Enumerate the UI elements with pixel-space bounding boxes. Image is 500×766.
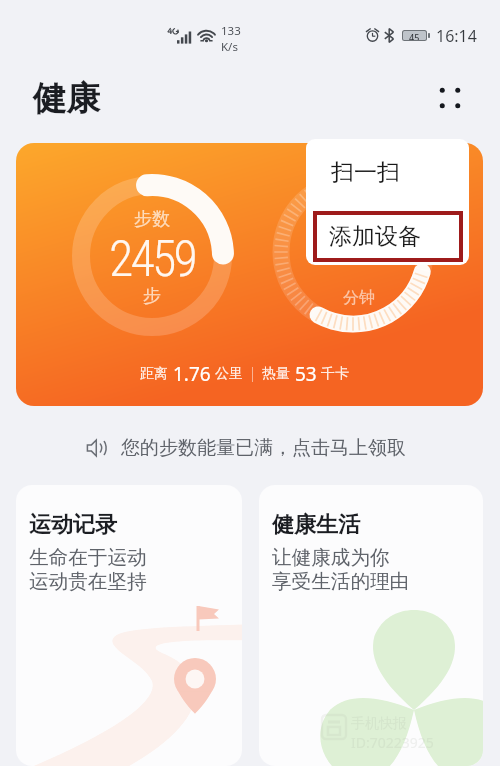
staticText: 2459 <box>52 230 252 289</box>
staticText: 分钟 <box>336 288 382 308</box>
staticText: 公里 <box>215 365 243 383</box>
button[interactable]: More options <box>432 80 468 116</box>
staticText: 运动记录 <box>29 511 117 539</box>
staticText: 添加设备 <box>329 222 421 251</box>
staticText: 距离 <box>140 365 168 383</box>
staticText: 45 <box>409 31 420 40</box>
staticText: 生命在于运动 运动贵在坚持 <box>29 545 147 594</box>
staticText: 53 <box>295 361 317 387</box>
staticText: ID:70223925 <box>351 733 434 752</box>
button[interactable]: 健康生活 <box>259 485 483 766</box>
staticText: 千卡 <box>321 365 349 383</box>
button[interactable]: 步数 <box>16 143 483 406</box>
staticText: 热量 <box>262 365 290 383</box>
button[interactable]: 扫一扫 <box>306 139 469 205</box>
staticText: 步 <box>52 285 252 308</box>
staticText: 手机快报 <box>351 715 407 733</box>
button[interactable]: 您的步数能量已满，点击马上领取 <box>85 432 415 464</box>
staticText: 您的步数能量已满，点击马上领取 <box>121 436 406 460</box>
staticText: 扫一扫 <box>331 158 400 187</box>
staticText: 16:14 <box>436 25 477 47</box>
staticText: 1.76 <box>173 361 211 387</box>
button[interactable]: 运动记录 <box>16 485 242 766</box>
staticText: 健康 <box>33 78 100 120</box>
staticText: 让健康成为你 享受生活的理由 <box>272 545 410 594</box>
staticText: 133 <box>221 23 241 39</box>
staticText: 步数 <box>52 208 252 231</box>
staticText: 健康生活 <box>272 511 360 539</box>
button[interactable]: 添加设备 <box>317 215 459 258</box>
staticText: K/s <box>221 39 238 55</box>
